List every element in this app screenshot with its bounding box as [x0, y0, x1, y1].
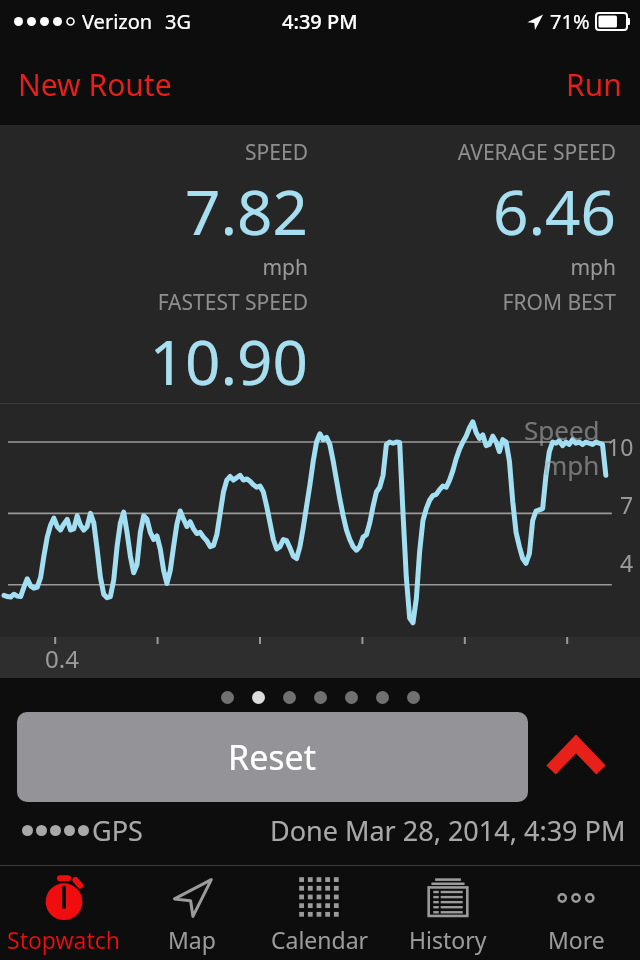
- staticText: 3G: [165, 8, 191, 35]
- button[interactable]: Stopwatch: [0, 866, 128, 960]
- button[interactable]: Expand: [528, 712, 623, 802]
- staticText: Stopwatch: [7, 924, 121, 955]
- button[interactable]: History: [384, 866, 512, 960]
- staticText: mph: [262, 253, 308, 282]
- staticText: 7: [620, 489, 634, 520]
- staticText: Calendar: [271, 924, 369, 955]
- staticText: SPEED: [245, 138, 308, 167]
- button[interactable]: Reset: [17, 712, 528, 802]
- staticText: Run: [566, 64, 622, 105]
- staticText: 71%: [550, 8, 590, 35]
- button[interactable]: Page 1: [221, 691, 234, 704]
- button[interactable]: Page 2: [252, 691, 265, 704]
- staticText: FASTEST SPEED: [157, 288, 308, 317]
- staticText: 10: [607, 431, 634, 462]
- button[interactable]: Run: [548, 54, 640, 115]
- staticText: GPS: [92, 812, 143, 849]
- staticText: 7.82: [184, 169, 308, 253]
- staticText: Speed: [524, 412, 600, 447]
- staticText: 4:39 PM: [282, 8, 358, 35]
- staticText: mph: [543, 447, 600, 482]
- staticText: Map: [168, 924, 216, 955]
- button[interactable]: Page 3: [283, 691, 296, 704]
- staticText: Reset: [228, 734, 317, 780]
- staticText: History: [409, 924, 487, 955]
- staticText: mph: [570, 253, 616, 282]
- button[interactable]: New Route: [0, 54, 190, 115]
- staticText: Verizon: [82, 8, 153, 35]
- staticText: More: [548, 924, 605, 955]
- button[interactable]: Page 5: [345, 691, 358, 704]
- button[interactable]: Page 4: [314, 691, 327, 704]
- button[interactable]: More: [512, 866, 640, 960]
- button[interactable]: Map: [128, 866, 256, 960]
- staticText: 6.46: [492, 169, 616, 253]
- button[interactable]: Calendar: [256, 866, 384, 960]
- staticText: 10.90: [149, 319, 308, 403]
- staticText: Done Mar 28, 2014, 4:39 PM: [270, 812, 626, 849]
- staticText: AVERAGE SPEED: [457, 138, 616, 167]
- staticText: 0.4: [45, 642, 79, 675]
- button[interactable]: Page 6: [376, 691, 389, 704]
- button[interactable]: Page 7: [407, 691, 420, 704]
- staticText: New Route: [18, 64, 172, 105]
- staticText: 4: [620, 547, 634, 578]
- staticText: FROM BEST: [502, 288, 616, 317]
